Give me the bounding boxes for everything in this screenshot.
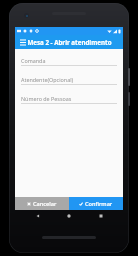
staticText: Número de Pessoas (21, 95, 72, 102)
button[interactable]: Recent apps (92, 210, 110, 221)
staticText: Comanda (21, 57, 46, 64)
staticText: Atendente(Opcional) (21, 76, 74, 83)
button[interactable]: Back (29, 210, 47, 221)
staticText: Mesa 2 - Abrir atendimento (27, 38, 112, 46)
button[interactable]: Atendente(Opcional) (21, 74, 117, 85)
button[interactable]: Comanda (21, 55, 117, 66)
button[interactable]: Home (60, 210, 78, 221)
staticText: Confirmar (85, 200, 113, 208)
staticText: Cancelar (33, 200, 57, 208)
button[interactable]: Número de Pessoas (21, 93, 117, 104)
button[interactable]: Menu (18, 38, 27, 47)
button[interactable]: Confirmar (69, 197, 123, 210)
button[interactable]: Cancelar (15, 197, 69, 210)
